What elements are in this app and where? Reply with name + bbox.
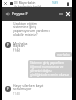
staticText: Merhaba — [13, 41, 28, 46]
staticText: F — [7, 87, 9, 91]
staticText: F — [7, 43, 9, 47]
button[interactable]: Dismiss notification — [2, 0, 9, 7]
staticText: ile baglantiniz kesildi — [14, 5, 42, 8]
button[interactable]: Sisteme giriş yaparken öğrenci numaranız… — [28, 60, 72, 78]
button[interactable]: Back — [3, 9, 13, 19]
staticText: 11:22 — [13, 48, 20, 52]
staticText: 11:30 — [13, 92, 20, 96]
staticText: %89 — [52, 1, 58, 5]
staticText: Baykan — [13, 43, 25, 48]
button[interactable]: Close — [63, 9, 73, 19]
button[interactable]: Minimize — [56, 9, 66, 19]
button[interactable]: merhaba — [55, 52, 72, 57]
staticText: Hayır silerken kayıt sorulmuyor — [13, 83, 45, 91]
staticText: merhaba — [57, 53, 70, 57]
staticText: Uzaktan eğitim sistemine giriş yapamıyor… — [13, 21, 53, 37]
staticText: DE Mayorbakin — [14, 1, 36, 5]
staticText: 11:24 — [13, 49, 20, 53]
staticText: Sisteme giriş yaparken öğrenci numaranız… — [30, 61, 70, 77]
staticText: Feyyaz F — [12, 11, 28, 16]
